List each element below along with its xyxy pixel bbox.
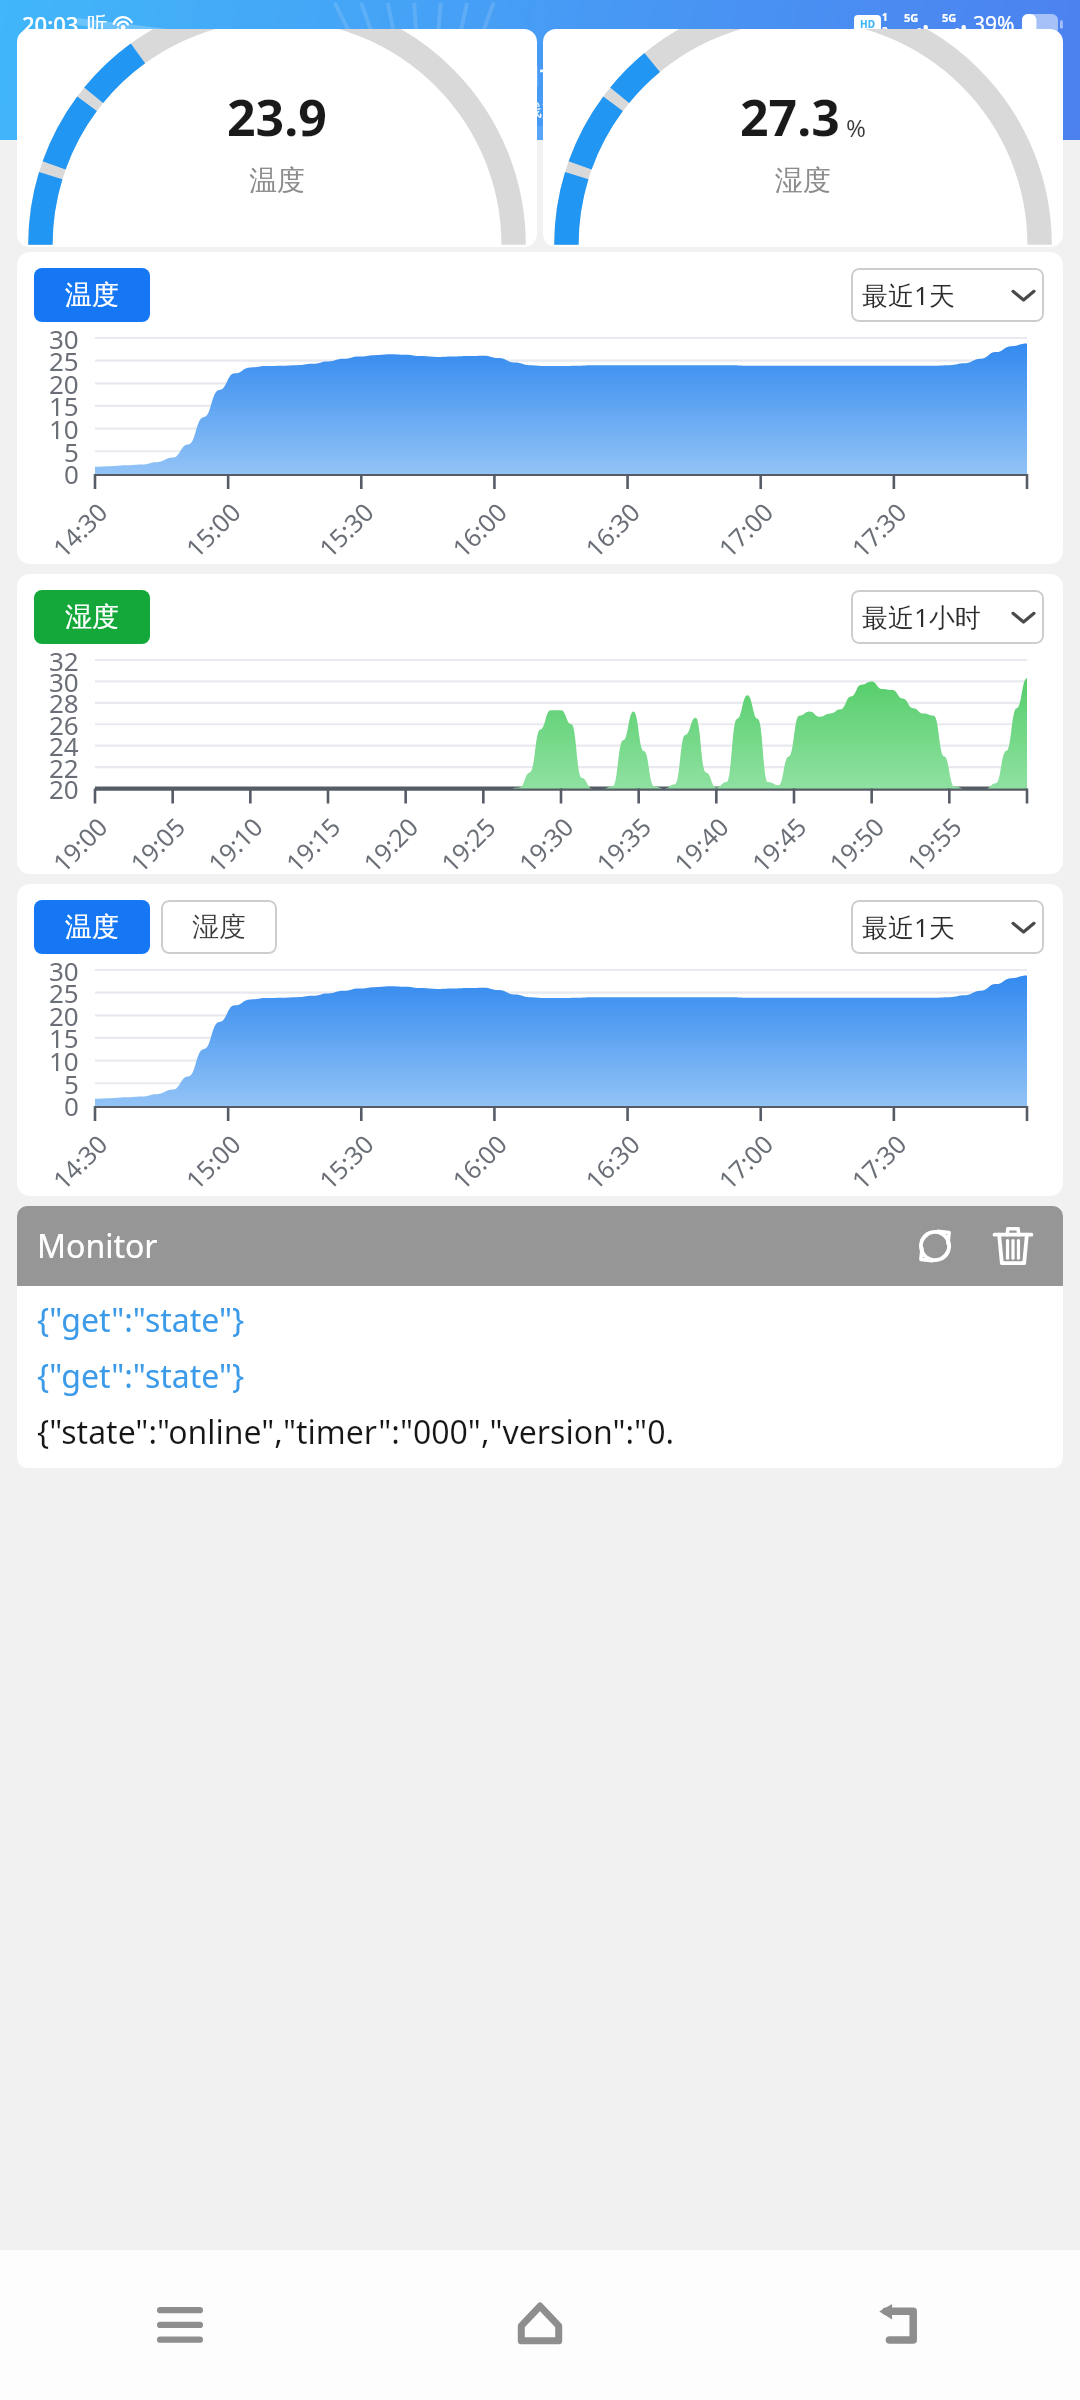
button[interactable]: 湿度 <box>161 900 277 954</box>
staticText: Monitor <box>37 1224 158 1268</box>
staticText: 湿度 <box>65 600 119 634</box>
staticText: 温度 <box>65 910 119 944</box>
button[interactable]: More options <box>924 48 990 114</box>
staticText: (在线) <box>503 98 548 121</box>
button[interactable]: Back <box>14 55 74 115</box>
button[interactable]: Refresh <box>905 1216 965 1276</box>
button[interactable]: Back <box>720 2250 1080 2400</box>
button[interactable]: 27.3 <box>543 29 1063 247</box>
staticText: 5G <box>942 10 957 25</box>
staticText: 湿度 <box>775 163 831 198</box>
button[interactable]: 最近1天 <box>862 900 1034 954</box>
staticText: {"get":"state"} <box>37 1298 245 1342</box>
staticText: 温度 <box>65 278 119 312</box>
staticText: 5G <box>904 10 919 25</box>
staticText: 最近1天 <box>862 909 955 945</box>
staticText: {"state":"online","timer":"000","version… <box>37 1410 675 1454</box>
staticText: 20:03 <box>22 9 79 39</box>
staticText: 温度 <box>249 163 305 198</box>
button[interactable]: Home <box>360 2250 720 2400</box>
button[interactable]: 温度 <box>34 900 150 954</box>
staticText: % <box>846 111 866 144</box>
button[interactable]: 温度 <box>34 268 150 322</box>
staticText: HD <box>860 17 875 31</box>
button[interactable]: Delete <box>983 1216 1043 1276</box>
button[interactable]: 23.9 <box>17 29 537 247</box>
staticText: 湿度 <box>192 910 246 944</box>
button[interactable]: 最近1天 <box>862 268 1034 322</box>
button[interactable]: 最近1小时 <box>862 590 1034 644</box>
staticText: 2 <box>882 24 888 38</box>
button[interactable]: 湿度 <box>34 590 150 644</box>
staticText: 最近1天 <box>862 277 955 313</box>
staticText: 最近1小时 <box>862 599 981 635</box>
staticText: 新的设备 <box>474 54 606 96</box>
staticText: 27.3 <box>740 83 840 151</box>
staticText: {"get":"state"} <box>37 1354 245 1398</box>
staticText: 23.9 <box>227 83 327 151</box>
button[interactable]: Edit <box>998 48 1064 114</box>
button[interactable]: Recent apps <box>0 2250 360 2400</box>
staticText: 听 <box>87 12 107 37</box>
staticText: 39% <box>973 10 1015 39</box>
staticText: 1 <box>882 10 888 24</box>
